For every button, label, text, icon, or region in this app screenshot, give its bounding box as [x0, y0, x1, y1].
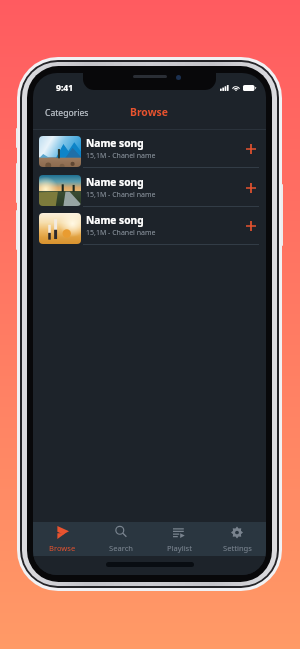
staticText: Settings: [223, 543, 252, 553]
button[interactable]: Add to playlist: [238, 213, 264, 239]
staticText: Name song: [86, 175, 144, 189]
button[interactable]: Name song: [33, 129, 266, 168]
button[interactable]: Add to playlist: [238, 136, 264, 162]
staticText: Browse: [49, 543, 76, 553]
staticText: 15,1M - Chanel name: [86, 190, 156, 200]
button[interactable]: Search: [92, 522, 150, 556]
staticText: Name song: [86, 213, 144, 227]
staticText: Categories: [45, 107, 89, 119]
button[interactable]: Playlist: [150, 522, 208, 556]
staticText: 15,1M - Chanel name: [86, 228, 156, 238]
button[interactable]: Browse: [33, 522, 92, 556]
button[interactable]: Name song: [33, 206, 266, 245]
staticText: Search: [109, 543, 134, 553]
staticText: 15,1M - Chanel name: [86, 151, 156, 161]
staticText: Name song: [86, 136, 144, 150]
staticText: 9:41: [56, 82, 74, 94]
button[interactable]: Settings: [208, 522, 266, 556]
staticText: Playlist: [167, 543, 192, 553]
button[interactable]: Name song: [33, 168, 266, 207]
staticText: Browse: [130, 105, 168, 119]
button[interactable]: Categories: [39, 101, 95, 125]
button[interactable]: Add to playlist: [238, 175, 264, 201]
button[interactable]: Browse: [124, 99, 174, 125]
